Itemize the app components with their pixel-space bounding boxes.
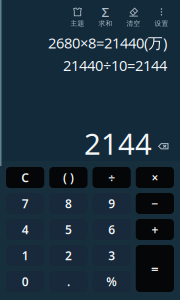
button[interactable]: 主题 xyxy=(64,5,91,29)
button[interactable]: Σ xyxy=(92,5,119,29)
button[interactable]: × xyxy=(136,167,174,188)
button[interactable]: 6 xyxy=(92,219,131,240)
button[interactable]: Delete xyxy=(158,143,169,150)
button[interactable]: ÷ xyxy=(92,167,131,188)
button[interactable]: 清空 xyxy=(120,5,147,29)
button[interactable]: 设置 xyxy=(148,5,175,29)
staticText: × xyxy=(151,169,158,185)
staticText: C xyxy=(21,169,29,185)
button[interactable]: + xyxy=(136,219,174,240)
staticText: % xyxy=(106,273,117,289)
staticText: 5 xyxy=(65,221,72,237)
button[interactable]: = xyxy=(136,245,174,292)
button[interactable]: % xyxy=(92,271,131,292)
staticText: 2680×8=21440(万) xyxy=(48,33,167,52)
staticText: 8 xyxy=(65,195,72,211)
staticText: 21440÷10=2144 xyxy=(63,55,167,75)
button[interactable]: C xyxy=(6,167,44,188)
button[interactable]: 8 xyxy=(49,193,87,214)
staticText: 3 xyxy=(108,247,115,263)
staticText: 设置 xyxy=(154,19,168,28)
staticText: 清空 xyxy=(126,19,140,28)
button[interactable]: 7 xyxy=(6,193,44,214)
button[interactable]: 0 xyxy=(6,271,44,292)
staticText: 主题 xyxy=(70,19,84,28)
staticText: 7 xyxy=(22,195,29,211)
staticText: 1 xyxy=(22,247,29,263)
button[interactable]: 1 xyxy=(6,245,44,266)
button[interactable]: 9 xyxy=(92,193,131,214)
staticText: − xyxy=(151,195,158,211)
staticText: 6 xyxy=(108,221,115,237)
staticText: 2 xyxy=(65,247,72,263)
button[interactable]: 2 xyxy=(49,245,87,266)
staticText: 0 xyxy=(22,273,29,289)
button[interactable]: 3 xyxy=(92,245,131,266)
staticText: 2144 xyxy=(84,124,152,163)
button[interactable]: 5 xyxy=(49,219,87,240)
staticText: ( ) xyxy=(63,169,74,185)
staticText: ÷ xyxy=(108,169,115,185)
staticText: 求和 xyxy=(98,19,112,28)
staticText: + xyxy=(151,221,158,237)
button[interactable]: . xyxy=(49,271,87,292)
button[interactable]: ( ) xyxy=(49,167,87,188)
button[interactable]: − xyxy=(136,193,174,214)
staticText: 4 xyxy=(22,221,29,237)
button[interactable]: 4 xyxy=(6,219,44,240)
staticText: = xyxy=(151,260,159,277)
staticText: 9 xyxy=(108,195,115,211)
staticText: . xyxy=(67,273,70,289)
staticText: Σ xyxy=(101,3,109,21)
